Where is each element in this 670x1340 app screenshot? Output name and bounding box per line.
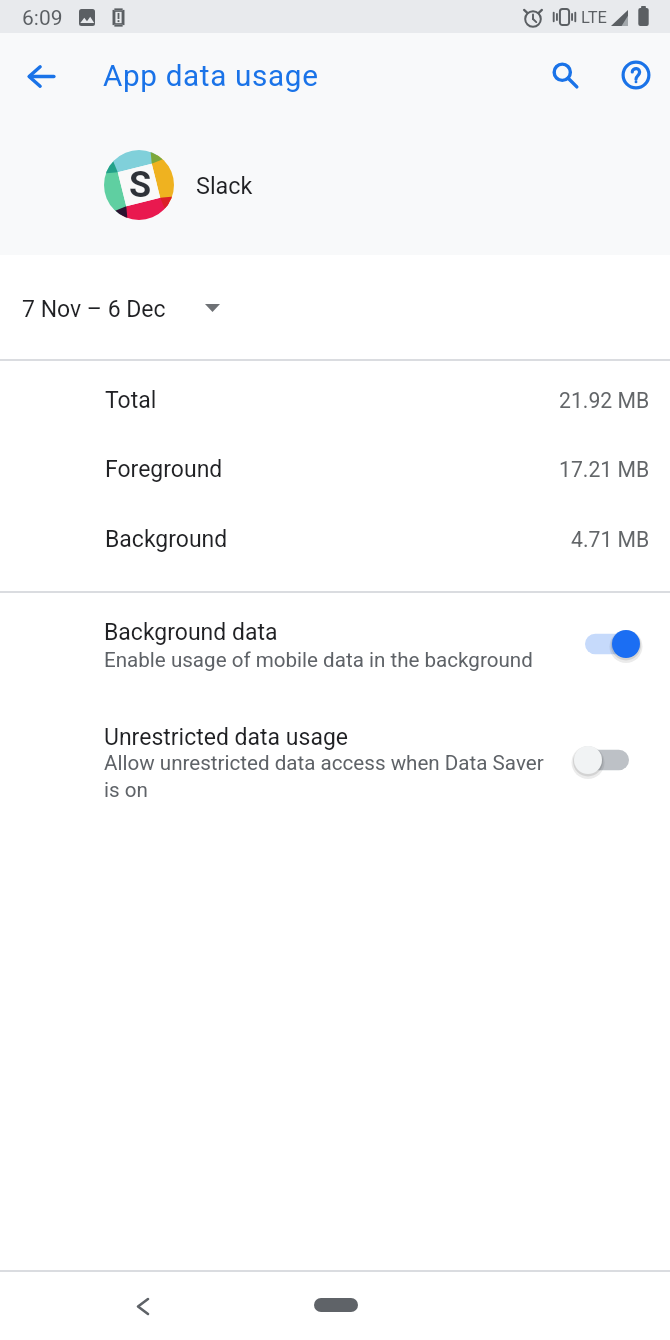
staticText: Unrestricted data usage [104,724,349,751]
button[interactable]: Help [612,51,660,99]
button[interactable]: Background data on [570,616,644,672]
staticText: Background data [104,619,278,646]
button[interactable]: Foreground [0,430,670,500]
staticText: 17.21 MB [559,457,650,482]
button[interactable]: Background data [0,593,670,703]
staticText: Background [105,526,228,553]
staticText: Total [105,387,157,414]
staticText: LTE [581,8,607,27]
button[interactable]: Back [118,1281,168,1331]
button[interactable]: Total [0,361,670,431]
button[interactable]: Home [314,1298,358,1312]
staticText: 4.71 MB [571,527,650,552]
staticText: Slack [196,172,253,199]
button[interactable]: 7 Nov – 6 Dec [0,255,670,360]
button[interactable]: Unrestricted data usage off [570,732,644,788]
button[interactable]: Background [0,500,670,570]
button[interactable]: Search [541,51,589,99]
staticText: 7 Nov – 6 Dec [22,296,166,323]
button[interactable]: Back [17,52,65,100]
staticText: Enable usage of mobile data in the backg… [104,648,533,672]
staticText: S [129,164,152,206]
button[interactable]: Unrestricted data usage [0,698,670,814]
staticText: 21.92 MB [559,388,650,413]
staticText: 6:09 [22,6,63,31]
staticText: Allow unrestricted data access when Data… [104,751,544,802]
staticText: Foreground [105,456,223,483]
staticText: App data usage [103,58,319,93]
